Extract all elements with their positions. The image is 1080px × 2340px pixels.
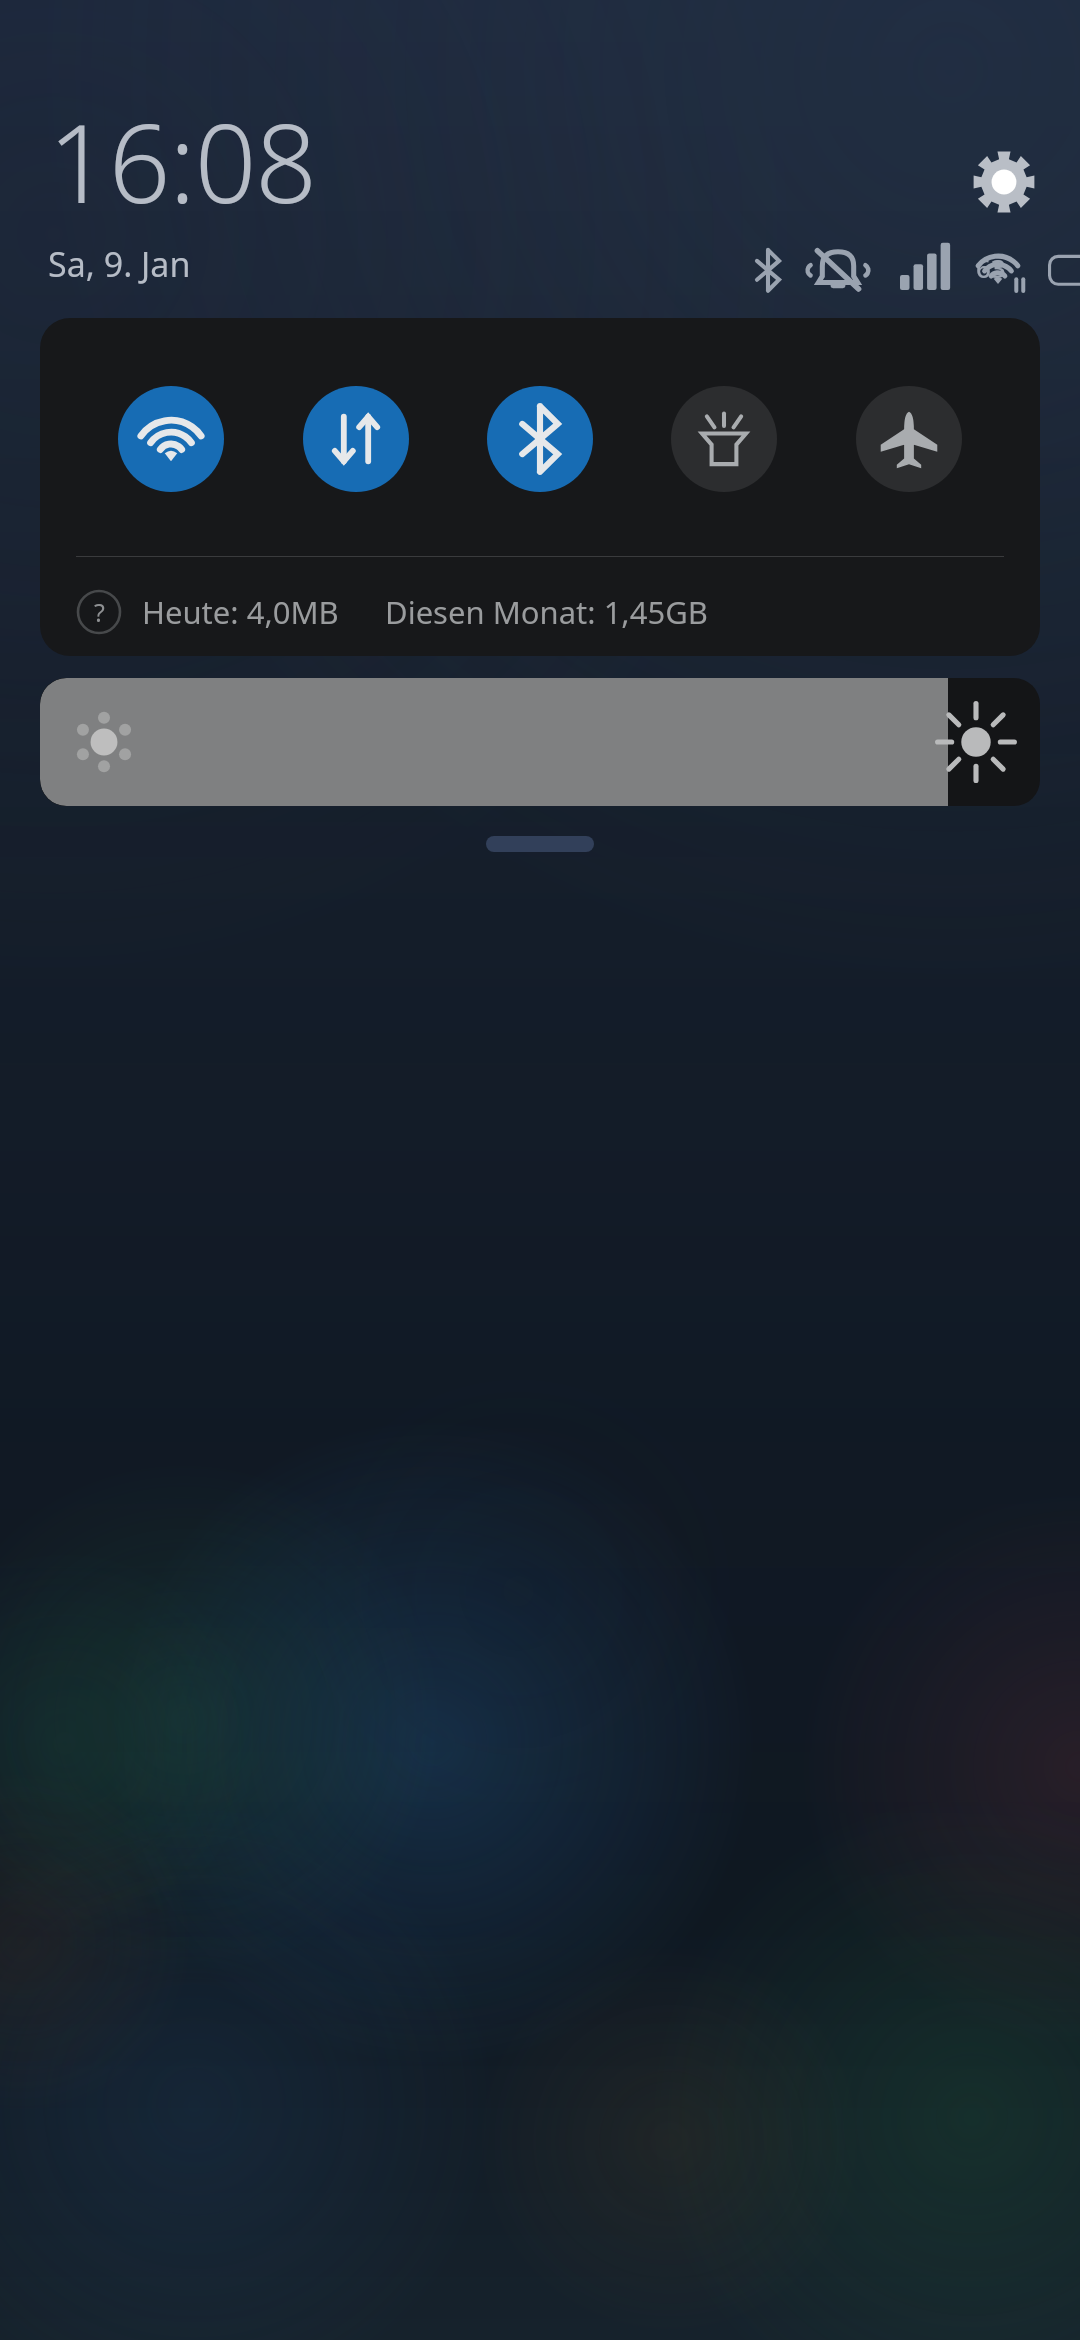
button[interactable]: Expand quick settings (486, 836, 594, 852)
button[interactable]: Settings (962, 140, 1046, 224)
button[interactable]: WLAN (118, 386, 224, 492)
staticText: Sa, 9. Jan (48, 241, 191, 287)
button[interactable]: Taschenlampe (671, 386, 777, 492)
button[interactable]: Flugmodus (856, 386, 962, 492)
button[interactable]: ? (76, 586, 708, 638)
staticText: ? (94, 595, 105, 629)
button[interactable]: Bluetooth (487, 386, 593, 492)
staticText: 63 (976, 250, 1006, 285)
staticText: 16:08 (48, 88, 317, 235)
button[interactable]: Brightness (40, 678, 1040, 806)
button[interactable]: Mobile Daten (303, 386, 409, 492)
staticText: Diesen Monat: 1,45GB (385, 591, 708, 633)
staticText: Heute: 4,0MB (142, 591, 339, 633)
